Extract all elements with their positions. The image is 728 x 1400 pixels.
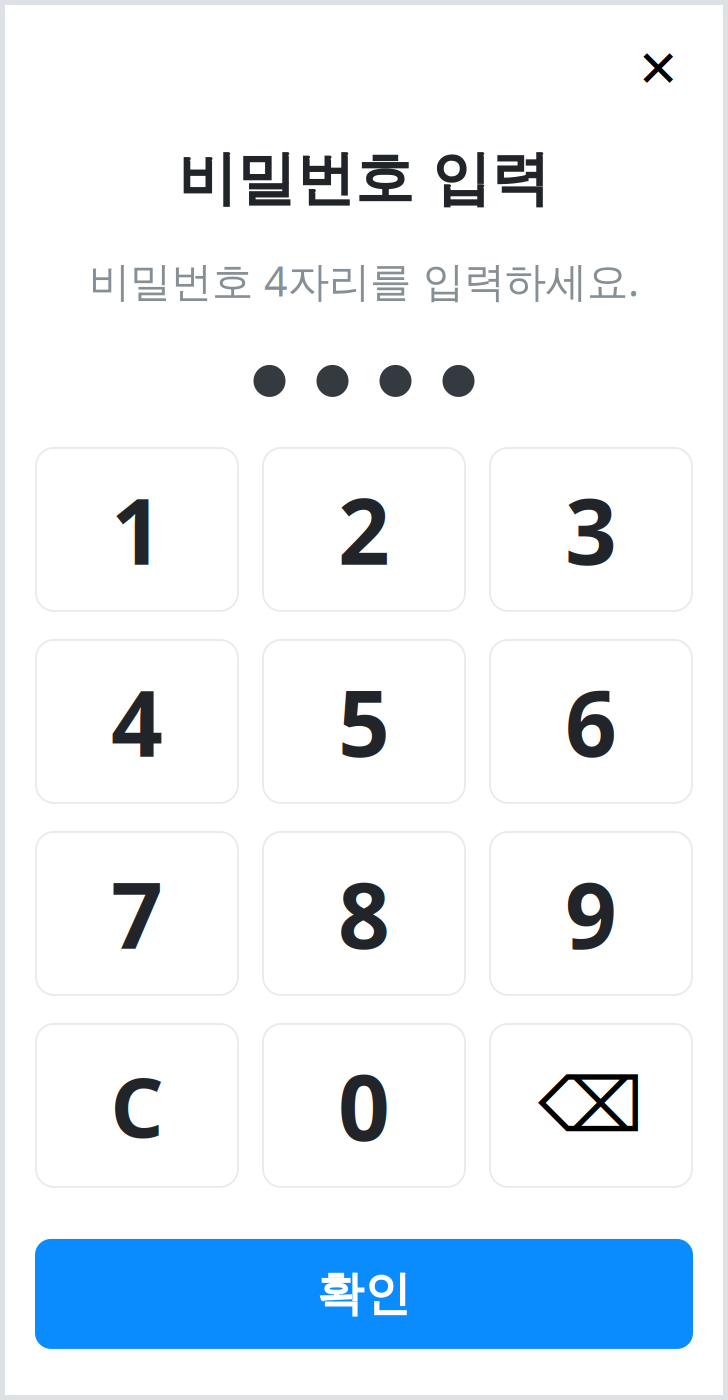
staticText: 확인 (317, 1265, 411, 1323)
button[interactable]: 9 (490, 832, 692, 995)
staticText: 7 (111, 853, 163, 974)
staticText: 0 (338, 1045, 390, 1166)
button[interactable]: 8 (263, 832, 465, 995)
staticText: ✕ (637, 40, 679, 98)
staticText: 비밀번호 4자리를 입력하세요. (89, 253, 639, 308)
button[interactable]: 6 (490, 640, 692, 803)
staticText: C (110, 1051, 163, 1160)
button[interactable]: Delete (490, 1024, 692, 1187)
staticText: 6 (565, 661, 617, 782)
staticText: 3 (565, 469, 617, 590)
staticText: 1 (111, 469, 163, 590)
staticText: 9 (565, 853, 617, 974)
button[interactable]: 4 (36, 640, 238, 803)
staticText: 2 (338, 469, 390, 590)
staticText: 비밀번호 입력 (178, 143, 550, 215)
staticText: 8 (338, 853, 390, 974)
button[interactable]: 5 (263, 640, 465, 803)
button[interactable]: 확인 (35, 1239, 693, 1349)
button[interactable]: 7 (36, 832, 238, 995)
staticText: 5 (338, 661, 390, 782)
button[interactable]: C (36, 1024, 238, 1187)
button[interactable]: Close (628, 39, 688, 99)
button[interactable]: 1 (36, 448, 238, 611)
button[interactable]: 2 (263, 448, 465, 611)
staticText: ⌫ (538, 1063, 644, 1148)
staticText: 4 (111, 661, 163, 782)
button[interactable]: 0 (263, 1024, 465, 1187)
button[interactable]: 3 (490, 448, 692, 611)
